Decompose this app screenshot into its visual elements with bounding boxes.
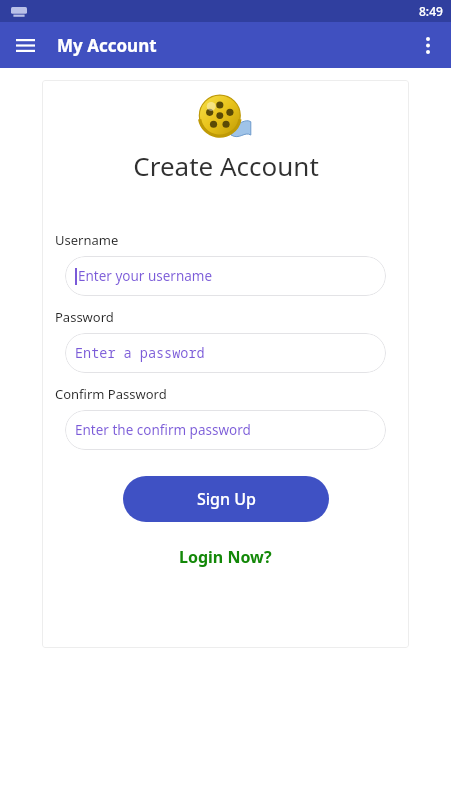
button[interactable]: Enter the confirm password xyxy=(65,410,386,450)
button[interactable]: Enter your username xyxy=(65,256,386,296)
button[interactable]: Enter a password xyxy=(65,333,386,373)
staticText: Login Now? xyxy=(179,546,272,568)
button[interactable]: More options xyxy=(411,28,445,62)
staticText: Enter a password xyxy=(75,344,205,362)
button[interactable]: Sign Up xyxy=(123,476,329,522)
staticText: Enter the confirm password xyxy=(75,421,251,439)
staticText: Password xyxy=(55,308,114,326)
staticText: Create Account xyxy=(133,148,319,183)
staticText: Username xyxy=(55,231,119,249)
staticText: 8:49 xyxy=(419,3,443,19)
staticText: Confirm Password xyxy=(55,385,167,403)
staticText: My Account xyxy=(57,34,157,57)
button[interactable]: Login Now? xyxy=(171,542,280,572)
button[interactable]: Open navigation menu xyxy=(8,28,42,62)
staticText: Enter your username xyxy=(78,267,213,285)
staticText: Sign Up xyxy=(197,488,256,510)
